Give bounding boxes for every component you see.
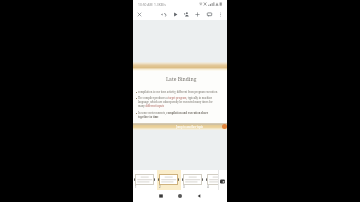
button[interactable]: Recents bbox=[155, 190, 167, 202]
button[interactable]: Add bbox=[192, 9, 203, 20]
button[interactable]: 4 bbox=[205, 170, 218, 190]
button[interactable]: Close bbox=[134, 9, 145, 20]
button[interactable]: Present bbox=[170, 9, 181, 20]
button[interactable]: 2 bbox=[157, 170, 181, 190]
staticText: 1 bbox=[135, 185, 137, 189]
button[interactable]: Jump to another topic bbox=[133, 62, 227, 129]
staticText: 4 bbox=[207, 185, 209, 189]
staticText: 10:50 AM 1.3KB/s bbox=[138, 2, 166, 6]
staticText: Jump to another topic bbox=[176, 125, 203, 129]
button[interactable]: Undo bbox=[158, 9, 169, 20]
button[interactable]: Back bbox=[193, 190, 205, 202]
staticText: compilation is one time activity, differ… bbox=[138, 90, 218, 93]
button[interactable]: Add slide bbox=[218, 170, 227, 190]
staticText: In some environments, compilation and ex… bbox=[138, 111, 219, 119]
button[interactable]: More options bbox=[215, 9, 226, 20]
button[interactable]: Resize handle bbox=[222, 124, 227, 129]
staticText: 2 bbox=[159, 185, 161, 189]
staticText: Late Binding bbox=[166, 76, 197, 83]
staticText: The compiler produces a target program, … bbox=[138, 96, 219, 108]
button[interactable]: Home bbox=[174, 190, 186, 202]
button[interactable]: 1 bbox=[133, 170, 157, 190]
button[interactable]: Comment bbox=[204, 9, 215, 20]
staticText: 3 bbox=[183, 185, 185, 189]
button[interactable]: 3 bbox=[181, 170, 205, 190]
button[interactable]: Share bbox=[181, 9, 192, 20]
